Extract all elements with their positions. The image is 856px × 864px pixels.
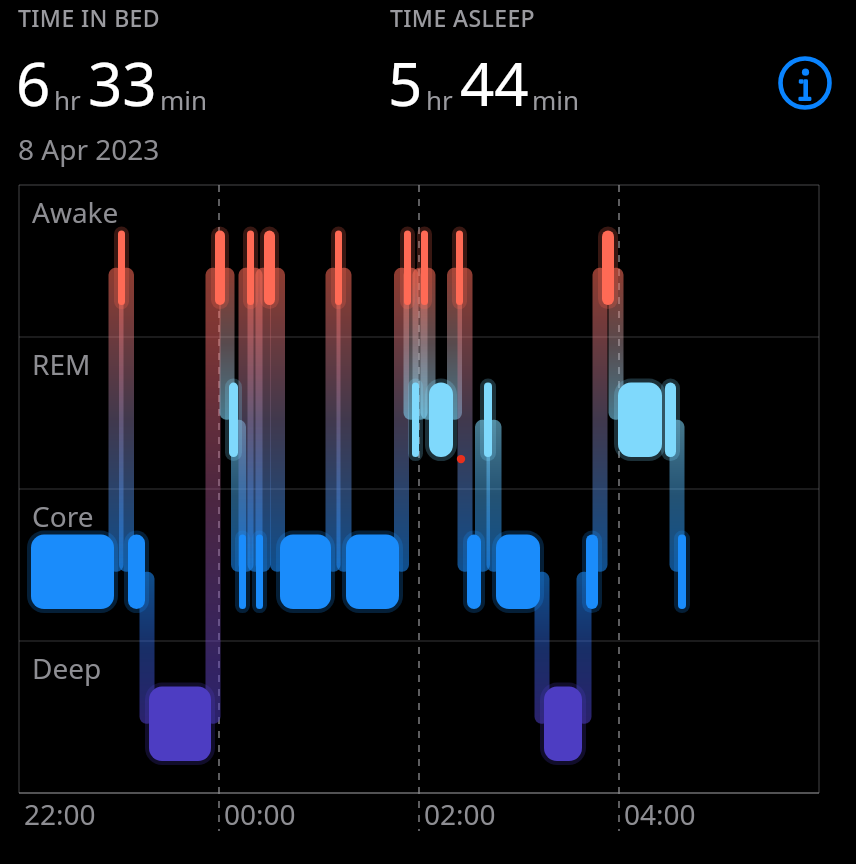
- staticText: 33: [88, 42, 157, 124]
- staticText: Awake: [32, 193, 119, 231]
- staticText: TIME IN BED: [18, 2, 161, 33]
- staticText: 04:00: [624, 795, 696, 833]
- staticText: 5: [388, 42, 423, 124]
- staticText: Deep: [32, 649, 102, 687]
- staticText: Core: [32, 497, 94, 535]
- staticText: 8 Apr 2023: [18, 130, 160, 168]
- staticText: min: [160, 82, 208, 117]
- button[interactable]: About sleep stages: [777, 55, 833, 111]
- staticText: min: [532, 82, 580, 117]
- staticText: 6: [16, 42, 51, 124]
- staticText: REM: [32, 345, 91, 383]
- staticText: 44: [460, 42, 529, 124]
- staticText: 02:00: [424, 795, 496, 833]
- staticText: hr: [426, 82, 453, 117]
- staticText: 00:00: [224, 795, 296, 833]
- staticText: hr: [54, 82, 81, 117]
- staticText: 22:00: [24, 795, 96, 833]
- staticText: TIME ASLEEP: [390, 2, 536, 33]
